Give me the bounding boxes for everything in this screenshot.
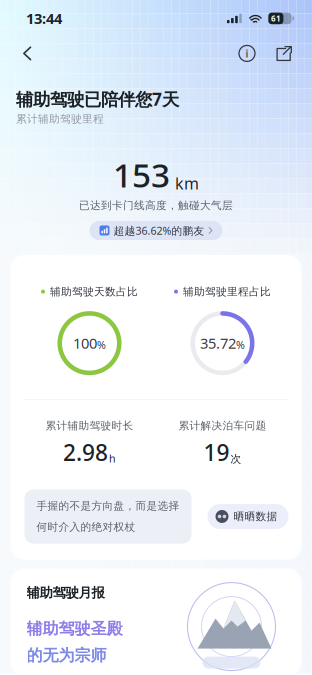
staticText: 次 [230,452,241,465]
staticText: 2.98 [63,437,108,467]
staticText: 累计辅助驾驶时长 [45,419,133,432]
button[interactable]: Info [232,39,262,67]
staticText: 辅助驾驶已陪伴您7天 [16,87,179,110]
staticText: 61 [271,13,281,24]
staticText: % [97,338,106,352]
staticText: 何时介入的绝对权杖 [36,520,135,534]
staticText: 累计辅助驾驶里程 [16,112,104,125]
button[interactable]: Share [269,39,299,67]
staticText: km [175,173,199,194]
staticText: 已达到卡门线高度，触碰大气层 [79,199,233,212]
button[interactable]: 晒晒数据 [207,504,288,529]
staticText: 100 [73,333,97,353]
staticText: 35.72 [200,333,236,353]
staticText: 晒晒数据 [233,510,277,523]
staticText: 累计解决泊车问题 [178,419,266,432]
staticText: 手握的不是方向盘，而是选择 [36,499,179,512]
button[interactable]: 超越36.62%的鹏友 [89,221,222,240]
staticText: % [236,338,245,352]
staticText: 辅助驾驶月报 [26,585,104,601]
staticText: 的无为宗师 [26,646,106,665]
staticText: 超越36.62%的鹏友 [113,223,204,238]
staticText: i [245,46,248,60]
button[interactable]: Back [12,40,42,66]
staticText: h [109,451,116,465]
staticText: 13:44 [26,9,62,28]
staticText: 辅助驾驶天数占比 [50,285,138,298]
staticText: 153 [113,152,170,197]
staticText: 辅助驾驶圣殿 [26,619,122,639]
staticText: 辅助驾驶里程占比 [183,285,271,298]
staticText: 19 [203,437,229,467]
